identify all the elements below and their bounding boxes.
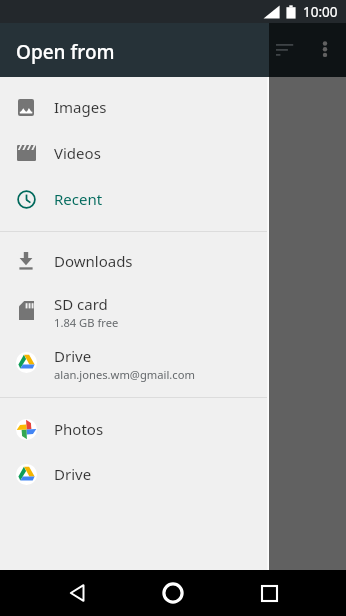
- staticText: alan.jones.wm@gmail.com: [54, 367, 195, 382]
- staticText: Drive: [54, 346, 92, 366]
- button[interactable]: Photos: [0, 406, 269, 452]
- button[interactable]: Videos: [0, 130, 269, 176]
- button[interactable]: Downloads: [0, 238, 269, 284]
- staticText: Videos: [54, 143, 101, 163]
- button[interactable]: Back: [57, 573, 97, 613]
- staticText: Open from: [16, 39, 115, 65]
- button[interactable]: Home: [153, 573, 193, 613]
- button[interactable]: Drive: [0, 451, 269, 497]
- staticText: Drive: [54, 464, 92, 484]
- staticText: Downloads: [54, 251, 133, 271]
- button[interactable]: More options: [308, 33, 342, 67]
- staticText: Images: [54, 97, 107, 117]
- staticText: Photos: [54, 419, 104, 439]
- staticText: SD card: [54, 294, 108, 314]
- button[interactable]: Images: [0, 84, 269, 130]
- staticText: 10:00: [303, 3, 338, 21]
- staticText: Recent: [54, 189, 103, 209]
- button[interactable]: Recents: [249, 573, 289, 613]
- button[interactable]: Recent: [0, 176, 269, 222]
- button[interactable]: Sort: [268, 33, 302, 67]
- staticText: 1.84 GB free: [54, 315, 119, 330]
- button[interactable]: Drive: [0, 337, 269, 391]
- button[interactable]: SD card: [0, 285, 269, 339]
